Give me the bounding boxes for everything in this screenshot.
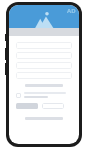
other: Advertisement image <box>31 11 57 28</box>
staticText: AD <box>67 7 76 15</box>
button[interactable] <box>16 42 72 49</box>
button[interactable]: Advertisement image <box>9 5 79 28</box>
button[interactable] <box>16 103 38 109</box>
button[interactable] <box>16 52 72 59</box>
button[interactable] <box>16 92 72 98</box>
button[interactable] <box>42 103 64 109</box>
button[interactable] <box>16 62 72 69</box>
button[interactable] <box>16 72 72 79</box>
